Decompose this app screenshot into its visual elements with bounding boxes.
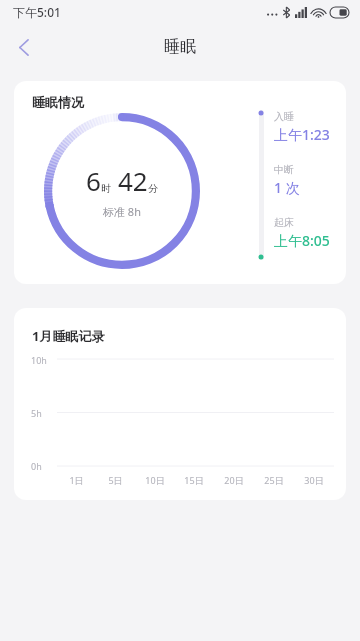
staticText: 5日 (108, 474, 123, 486)
staticText: 0h (31, 460, 42, 472)
staticText: 1月睡眠记录 (32, 327, 105, 345)
staticText: 下午5:01 (13, 4, 61, 20)
button[interactable]: 1月睡眠记录 (14, 308, 346, 500)
staticText: 30日 (304, 474, 324, 486)
staticText: 42 (118, 163, 148, 198)
staticText: 分 (148, 182, 158, 195)
staticText: 中断 (274, 163, 294, 176)
staticText: 标准 8h (103, 204, 141, 219)
staticText: 5h (31, 407, 42, 419)
button[interactable]: Back (0, 24, 46, 70)
staticText: 睡眠 (164, 37, 196, 57)
staticText: 6 (86, 163, 101, 198)
button[interactable]: 睡眠情况 (14, 81, 346, 284)
staticText: 入睡 (274, 110, 294, 123)
staticText: 20日 (224, 474, 244, 486)
staticText: 上午8:05 (274, 231, 330, 250)
staticText: 起床 (274, 216, 294, 229)
staticText: 10日 (145, 474, 165, 486)
staticText: 上午1:23 (274, 125, 330, 144)
staticText: 睡眠情况 (32, 94, 84, 110)
staticText: 25日 (264, 474, 284, 486)
staticText: 时 (101, 182, 111, 195)
staticText: 10h (31, 354, 47, 366)
staticText: 1 次 (274, 178, 300, 197)
staticText: 15日 (184, 474, 204, 486)
staticText: 1日 (69, 474, 84, 486)
